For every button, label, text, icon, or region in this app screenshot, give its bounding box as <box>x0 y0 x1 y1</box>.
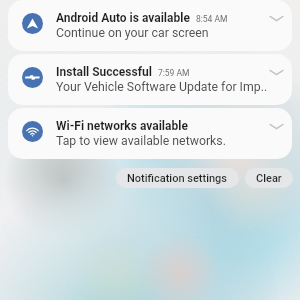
button[interactable]: Clear <box>245 168 293 188</box>
staticText: Android Auto is available <box>56 11 190 25</box>
button[interactable]: Notification settings <box>116 168 239 188</box>
staticText: 8:54 AM <box>196 14 228 24</box>
staticText: Clear <box>256 172 282 185</box>
button[interactable]: Install Successful <box>8 54 292 105</box>
button[interactable]: Expand <box>267 63 285 81</box>
button[interactable]: Expand <box>267 9 285 27</box>
staticText: Continue on your car screen <box>56 26 209 40</box>
staticText: Notification settings <box>127 172 228 185</box>
button[interactable]: Android Auto is available <box>8 0 292 51</box>
staticText: Tap to view available networks. <box>56 134 226 148</box>
button[interactable]: Wi-Fi networks available <box>8 108 292 159</box>
staticText: Your Vehicle Software Update for Imp.. <box>56 80 268 94</box>
staticText: Install Successful <box>56 65 152 79</box>
staticText: Wi-Fi networks available <box>56 119 188 133</box>
staticText: 7:59 AM <box>158 68 190 78</box>
button[interactable]: Expand <box>267 117 285 135</box>
